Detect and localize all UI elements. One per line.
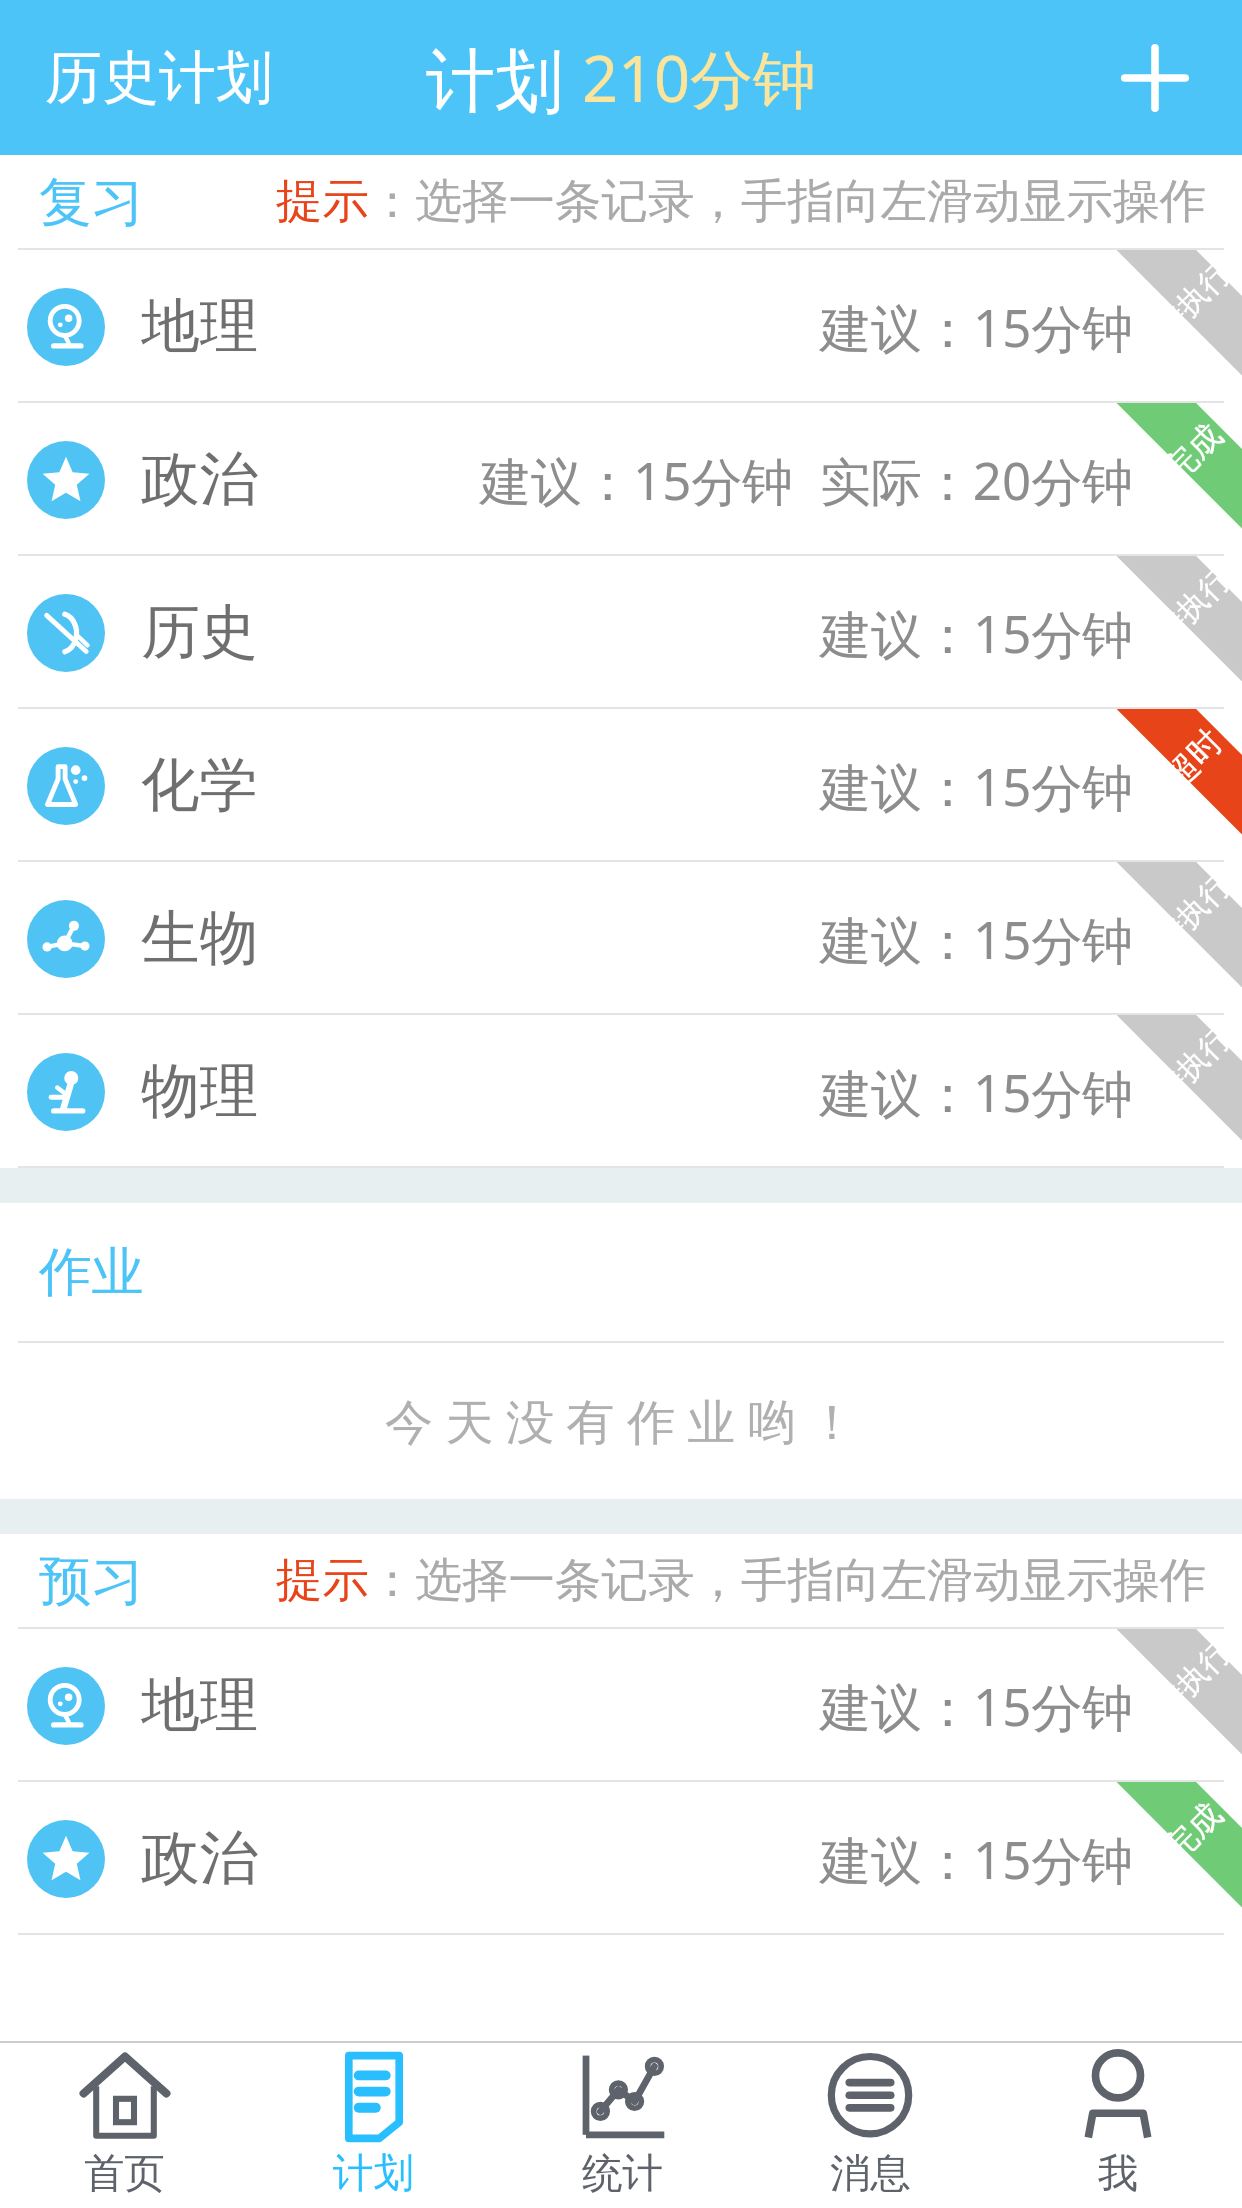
staticText: 政治	[141, 1822, 258, 1896]
button[interactable]: Add plan	[1068, 0, 1242, 155]
staticText: 生物	[141, 902, 258, 976]
staticText: 计划	[333, 2148, 414, 2199]
staticText: 建议：15分钟	[820, 1671, 1134, 1741]
button[interactable]: 历史计划	[0, 0, 309, 155]
staticText: 建议：15分钟 实际：20分钟	[480, 445, 1134, 515]
staticText: 建议：15分钟	[820, 751, 1134, 821]
staticText: ：选择一条记录，手指向左滑动显示操作	[369, 172, 1206, 231]
button[interactable]: 地理	[0, 1629, 1242, 1782]
staticText: 提示	[276, 172, 369, 231]
button[interactable]: 化学	[0, 709, 1242, 862]
staticText: ：选择一条记录，手指向左滑动显示操作	[369, 1551, 1206, 1610]
staticText: 建议：15分钟	[820, 1824, 1134, 1894]
staticText: 物理	[141, 1055, 258, 1129]
staticText: 地理	[141, 1669, 258, 1743]
staticText: 首页	[84, 2148, 165, 2199]
button[interactable]: 消息	[746, 2043, 994, 2208]
staticText: 超时	[1155, 721, 1231, 797]
staticText: 政治	[141, 443, 258, 517]
staticText: 统计	[582, 2148, 663, 2199]
staticText: 完成	[1155, 415, 1231, 491]
button[interactable]: 政治	[0, 403, 1242, 556]
staticText: 提示	[276, 1551, 369, 1610]
button[interactable]: 政治	[0, 1782, 1242, 1935]
staticText: 建议：15分钟	[820, 292, 1134, 362]
staticText: 建议：15分钟	[820, 598, 1134, 668]
staticText: 我	[1098, 2148, 1139, 2199]
staticText: 待执行	[1148, 1634, 1238, 1724]
staticText: 待执行	[1148, 255, 1238, 345]
staticText: 待执行	[1148, 561, 1238, 651]
button[interactable]: 生物	[0, 862, 1242, 1015]
staticText: 复习	[39, 169, 144, 235]
button[interactable]: 首页	[0, 2043, 249, 2208]
staticText: 完成	[1155, 1794, 1231, 1870]
staticText: 待执行	[1148, 1020, 1238, 1110]
button[interactable]: 物理	[0, 1015, 1242, 1168]
staticText: 建议：15分钟	[820, 1057, 1134, 1127]
staticText: 210分钟	[582, 35, 817, 121]
staticText: 待执行	[1148, 867, 1238, 957]
button[interactable]: 我	[994, 2043, 1242, 2208]
button[interactable]: 统计	[498, 2043, 746, 2208]
staticText: 预习	[39, 1548, 144, 1614]
staticText: 历史计划	[45, 42, 273, 114]
staticText: 建议：15分钟	[820, 904, 1134, 974]
staticText: 消息	[830, 2148, 911, 2199]
staticText: 作业	[39, 1239, 144, 1305]
staticText: 计划	[426, 31, 582, 125]
staticText: 化学	[141, 749, 258, 823]
button[interactable]: 历史	[0, 556, 1242, 709]
button[interactable]: 地理	[0, 250, 1242, 403]
staticText: 历史	[141, 596, 258, 670]
button[interactable]: 计划	[249, 2043, 498, 2208]
staticText: 地理	[141, 290, 258, 364]
staticText: 今 天 没 有 作 业 哟 ！	[385, 1388, 857, 1454]
